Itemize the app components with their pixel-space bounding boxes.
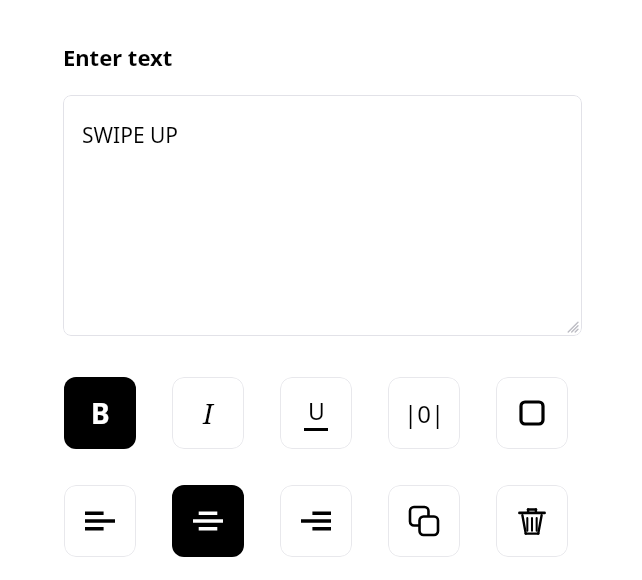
- button[interactable]: Bold: [64, 377, 136, 449]
- button[interactable]: Text direction: [388, 377, 460, 449]
- staticText: U: [308, 395, 325, 426]
- button[interactable]: Border: [496, 377, 568, 449]
- button[interactable]: Underline: [280, 377, 352, 449]
- button[interactable]: Align left: [64, 485, 136, 557]
- staticText: SWIPE UP: [82, 121, 179, 150]
- button[interactable]: Italic: [172, 377, 244, 449]
- staticText: |0|: [404, 397, 445, 430]
- staticText: Enter text: [63, 42, 173, 72]
- button[interactable]: Copy: [388, 485, 460, 557]
- button[interactable]: SWIPE UP: [63, 95, 582, 336]
- staticText: I: [203, 395, 213, 432]
- button[interactable]: Delete: [496, 485, 568, 557]
- button[interactable]: Align center: [172, 485, 244, 557]
- button[interactable]: Align right: [280, 485, 352, 557]
- staticText: B: [91, 394, 110, 432]
